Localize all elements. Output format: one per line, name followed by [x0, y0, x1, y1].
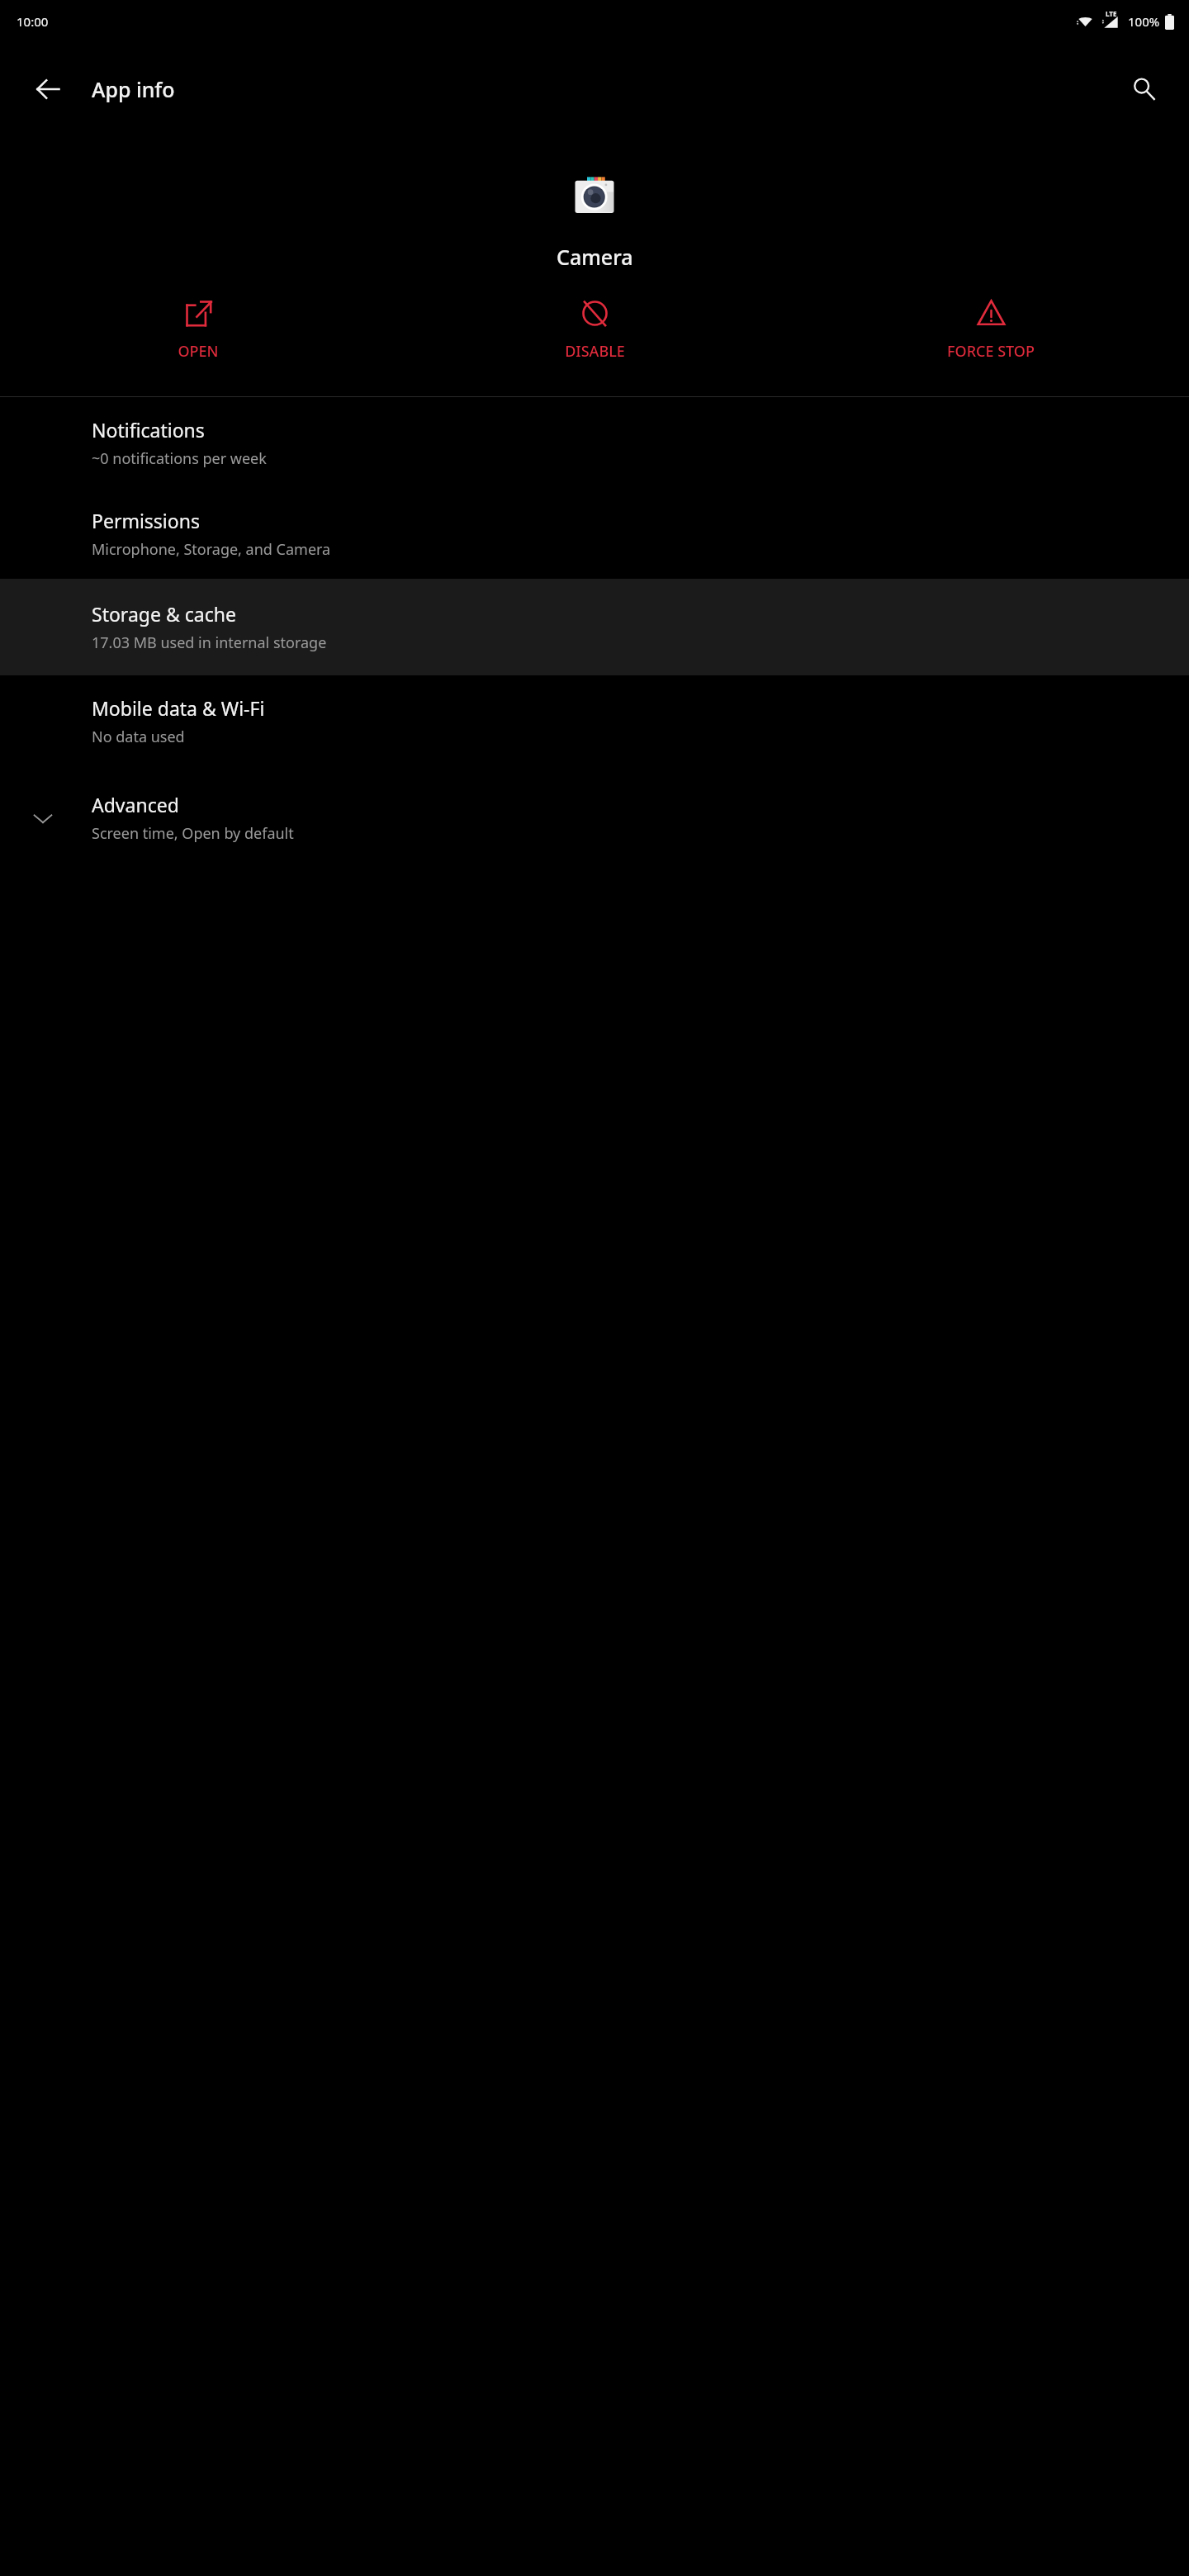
button[interactable]: FORCE STOP — [793, 294, 1189, 367]
staticText: App info — [92, 75, 175, 103]
button[interactable]: Back — [25, 66, 71, 112]
button[interactable]: Mobile data & Wi-Fi — [0, 675, 1189, 766]
button[interactable]: Search — [1121, 66, 1168, 112]
staticText: LTE — [1106, 9, 1117, 18]
button[interactable]: Advanced — [0, 766, 1189, 869]
staticText: Notifications — [92, 417, 205, 443]
staticText: 10:00 — [17, 13, 49, 30]
staticText: 100% — [1128, 13, 1160, 30]
staticText: OPEN — [178, 341, 219, 362]
staticText: Camera — [557, 243, 633, 271]
button[interactable]: DISABLE — [396, 294, 793, 367]
button[interactable]: Notifications — [0, 397, 1189, 488]
staticText: 17.03 MB used in internal storage — [92, 632, 327, 653]
button[interactable]: Permissions — [0, 488, 1189, 579]
staticText: Storage & cache — [92, 601, 236, 627]
button[interactable]: Storage & cache — [0, 579, 1189, 675]
staticText: Advanced — [92, 792, 179, 817]
staticText: Permissions — [92, 508, 200, 533]
staticText: Screen time, Open by default — [92, 823, 294, 844]
staticText: Mobile data & Wi-Fi — [92, 695, 265, 721]
staticText: FORCE STOP — [947, 341, 1035, 362]
button[interactable]: OPEN — [0, 294, 396, 367]
staticText: DISABLE — [565, 341, 625, 362]
staticText: ~0 notifications per week — [92, 448, 267, 469]
staticText: Microphone, Storage, and Camera — [92, 539, 331, 560]
staticText: No data used — [92, 727, 185, 747]
